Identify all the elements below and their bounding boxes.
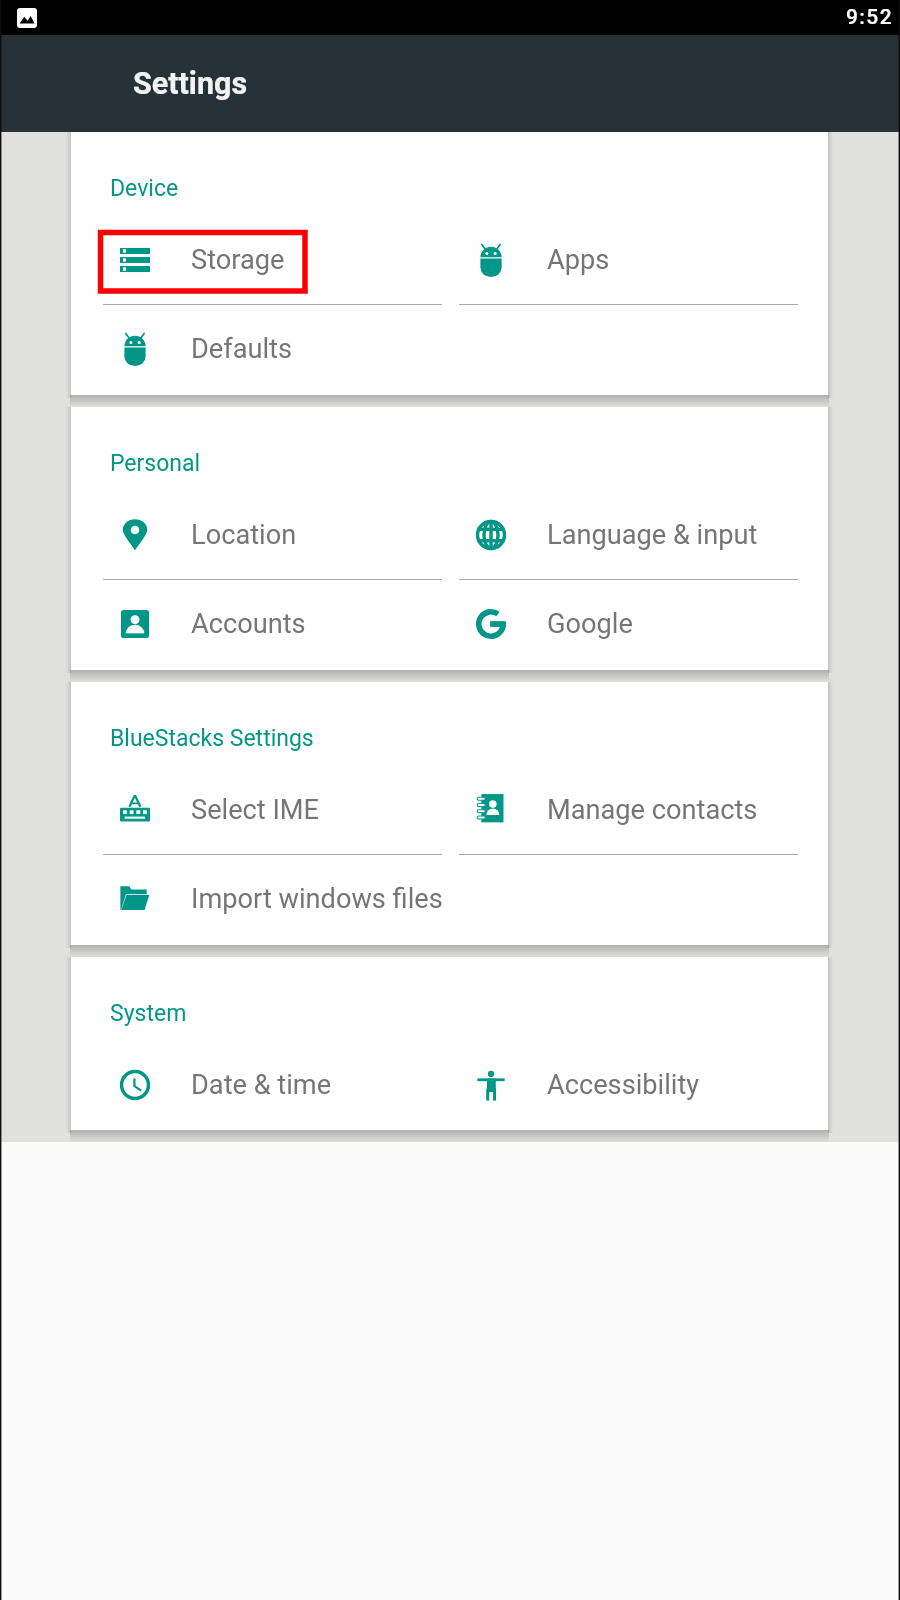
button[interactable]: Location — [87, 490, 443, 579]
button[interactable]: Language & input — [443, 490, 799, 579]
staticText: Location — [191, 519, 297, 551]
staticText: Apps — [547, 244, 610, 276]
staticText: Accessibility — [547, 1069, 700, 1101]
button[interactable]: Google — [443, 579, 799, 668]
staticText: Import windows files — [191, 883, 443, 915]
staticText: System — [110, 1000, 187, 1027]
button[interactable]: Select IME — [87, 765, 443, 854]
other: Screenshot — [17, 8, 37, 28]
staticText: Defaults — [191, 333, 293, 365]
button[interactable]: Import windows files — [87, 854, 443, 943]
button[interactable]: Apps — [443, 215, 799, 304]
button[interactable]: Date & time — [87, 1040, 443, 1129]
staticText: Accounts — [191, 608, 306, 640]
button[interactable]: Defaults — [87, 304, 443, 393]
staticText: Language & input — [547, 519, 758, 551]
staticText: Select IME — [191, 794, 320, 826]
staticText: 9:52 — [846, 5, 893, 30]
staticText: Personal — [110, 450, 201, 477]
staticText: Device — [110, 175, 179, 202]
button[interactable]: Accessibility — [443, 1040, 799, 1129]
staticText: Manage contacts — [547, 794, 758, 826]
staticText: Date & time — [191, 1069, 332, 1101]
staticText: BlueStacks Settings — [110, 725, 314, 752]
button[interactable]: Storage — [87, 215, 443, 304]
button[interactable]: Manage contacts — [443, 765, 799, 854]
staticText: Storage — [191, 244, 285, 276]
staticText: Settings — [133, 66, 248, 102]
button[interactable]: Accounts — [87, 579, 443, 668]
staticText: Google — [547, 608, 633, 640]
